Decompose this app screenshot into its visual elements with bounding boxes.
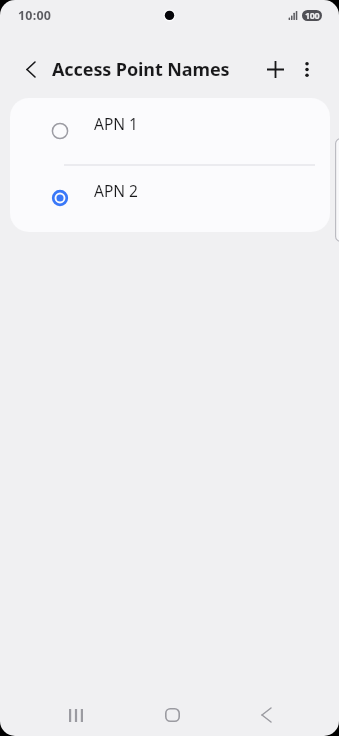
staticText: Access Point Names [52,57,230,82]
button[interactable]: Back [242,692,290,736]
button[interactable]: APN 2 [10,165,330,232]
button[interactable]: Add [255,46,295,90]
button[interactable]: Back [13,50,49,86]
staticText: APN 2 [94,180,138,201]
button[interactable]: Home [148,692,196,736]
staticText: APN 1 [94,113,138,134]
button[interactable]: APN 1 [10,98,330,165]
staticText: 100 [305,10,320,20]
button[interactable]: Recents [52,692,100,736]
button[interactable]: More options [288,46,326,90]
staticText: 10:00 [18,7,52,24]
